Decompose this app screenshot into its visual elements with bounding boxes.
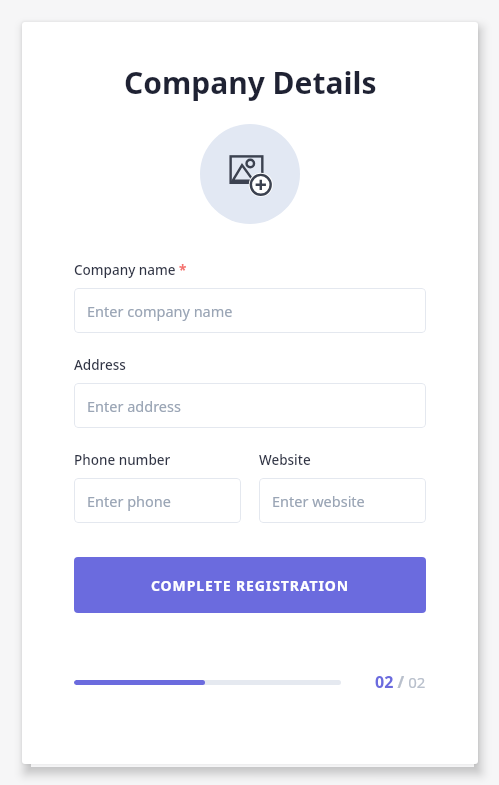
staticText: COMPLETE REGISTRATION [151, 576, 350, 595]
button[interactable]: Enter website [259, 478, 426, 523]
button[interactable]: Enter address [74, 383, 426, 428]
staticText: Company name * [74, 261, 187, 279]
staticText: Company Details [124, 62, 377, 103]
button[interactable]: Enter phone number [74, 478, 241, 523]
staticText: Enter website [272, 491, 365, 511]
button[interactable]: Enter company name [74, 288, 426, 333]
staticText: Phone number [74, 451, 171, 469]
staticText: Website [259, 451, 311, 469]
staticText: Enter phone number [87, 491, 228, 511]
staticText: Enter company name [87, 301, 233, 321]
button[interactable]: Add company logo [200, 124, 300, 224]
staticText: Enter address [87, 396, 181, 416]
staticText: Address [74, 356, 126, 374]
staticText: 02 / 02 [375, 671, 426, 693]
button[interactable]: COMPLETE REGISTRATION [74, 557, 426, 613]
